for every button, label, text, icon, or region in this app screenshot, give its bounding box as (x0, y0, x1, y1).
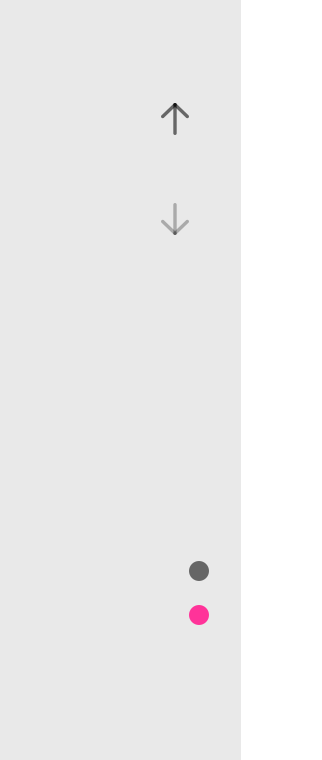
button[interactable]: Grey (189, 561, 209, 581)
button[interactable]: Move down (161, 203, 189, 235)
button[interactable]: Pink (189, 605, 209, 625)
button[interactable]: Move up (161, 103, 189, 135)
